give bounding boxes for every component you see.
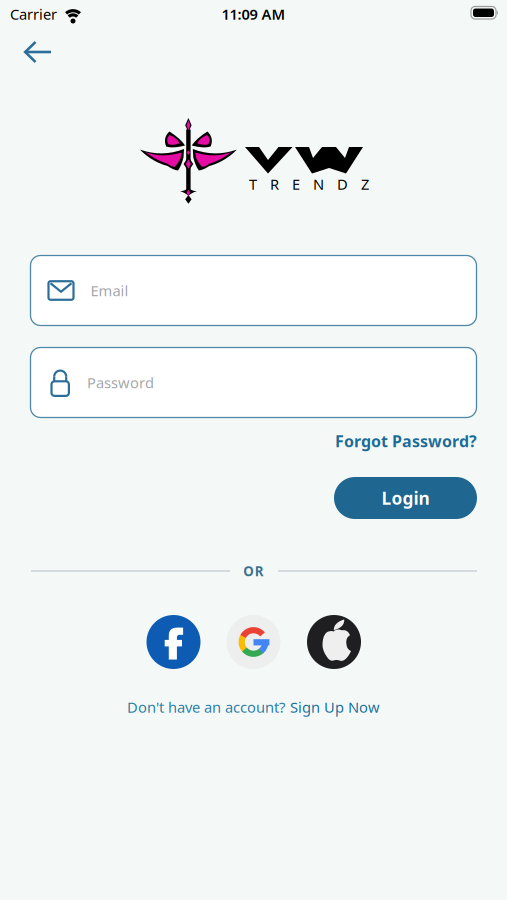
button[interactable]: Email	[30, 255, 476, 325]
staticText: 11:09 AM	[221, 4, 285, 24]
button[interactable]: Password	[30, 347, 476, 417]
button[interactable]: Back	[16, 34, 60, 70]
staticText: TRENDZ	[249, 174, 369, 194]
button[interactable]: Sign Up Now	[290, 697, 380, 717]
button[interactable]: Sign in with Facebook	[146, 615, 200, 669]
button[interactable]: Sign in with Google	[226, 615, 280, 669]
button[interactable]: Forgot Password?	[335, 430, 477, 452]
staticText: Login	[381, 486, 429, 509]
staticText: Don't have an account?	[127, 697, 285, 717]
staticText: OR	[243, 562, 264, 580]
staticText: Password	[87, 373, 154, 392]
staticText: Sign Up Now	[290, 697, 380, 717]
staticText: Carrier	[10, 4, 57, 24]
staticText: Email	[90, 281, 128, 300]
button[interactable]: Sign in with Apple	[307, 615, 361, 669]
staticText: Forgot Password?	[335, 430, 477, 452]
button[interactable]: Login	[334, 477, 477, 519]
